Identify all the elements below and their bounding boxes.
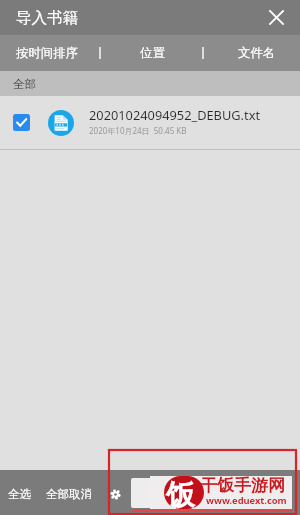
staticText: 位置 bbox=[140, 45, 165, 61]
button[interactable]: Settings bbox=[108, 487, 122, 501]
button[interactable]: Selected bbox=[13, 114, 30, 131]
staticText: www.eduext.com bbox=[206, 494, 287, 507]
staticText: 文件名 bbox=[238, 45, 276, 61]
staticText: 全选 bbox=[8, 487, 31, 501]
staticText: 干饭手游网 bbox=[200, 475, 285, 496]
staticText: 按时间排序 bbox=[16, 45, 78, 61]
button[interactable]: 全部取消 bbox=[44, 479, 94, 509]
button[interactable]: 文件名 bbox=[203, 35, 300, 71]
button[interactable]: Close bbox=[253, 0, 300, 35]
button[interactable]: 按时间排序 bbox=[0, 35, 99, 71]
staticText: 饭 bbox=[166, 477, 195, 514]
button[interactable]: Selected bbox=[0, 96, 300, 149]
button[interactable]: 位置 bbox=[100, 35, 202, 71]
button[interactable]: 全部 bbox=[0, 71, 300, 96]
staticText: 加入(1) bbox=[193, 485, 230, 501]
staticText: 全部 bbox=[13, 77, 36, 91]
button[interactable]: 加入(1) bbox=[131, 478, 292, 508]
staticText: 2020年10月24日 50.45 KB bbox=[89, 125, 187, 136]
staticText: 20201024094952_DEBUG.txt bbox=[89, 106, 261, 123]
staticText: 导入书籍 bbox=[16, 8, 78, 28]
button[interactable]: 全选 bbox=[6, 479, 33, 509]
staticText: 全部取消 bbox=[46, 487, 92, 501]
